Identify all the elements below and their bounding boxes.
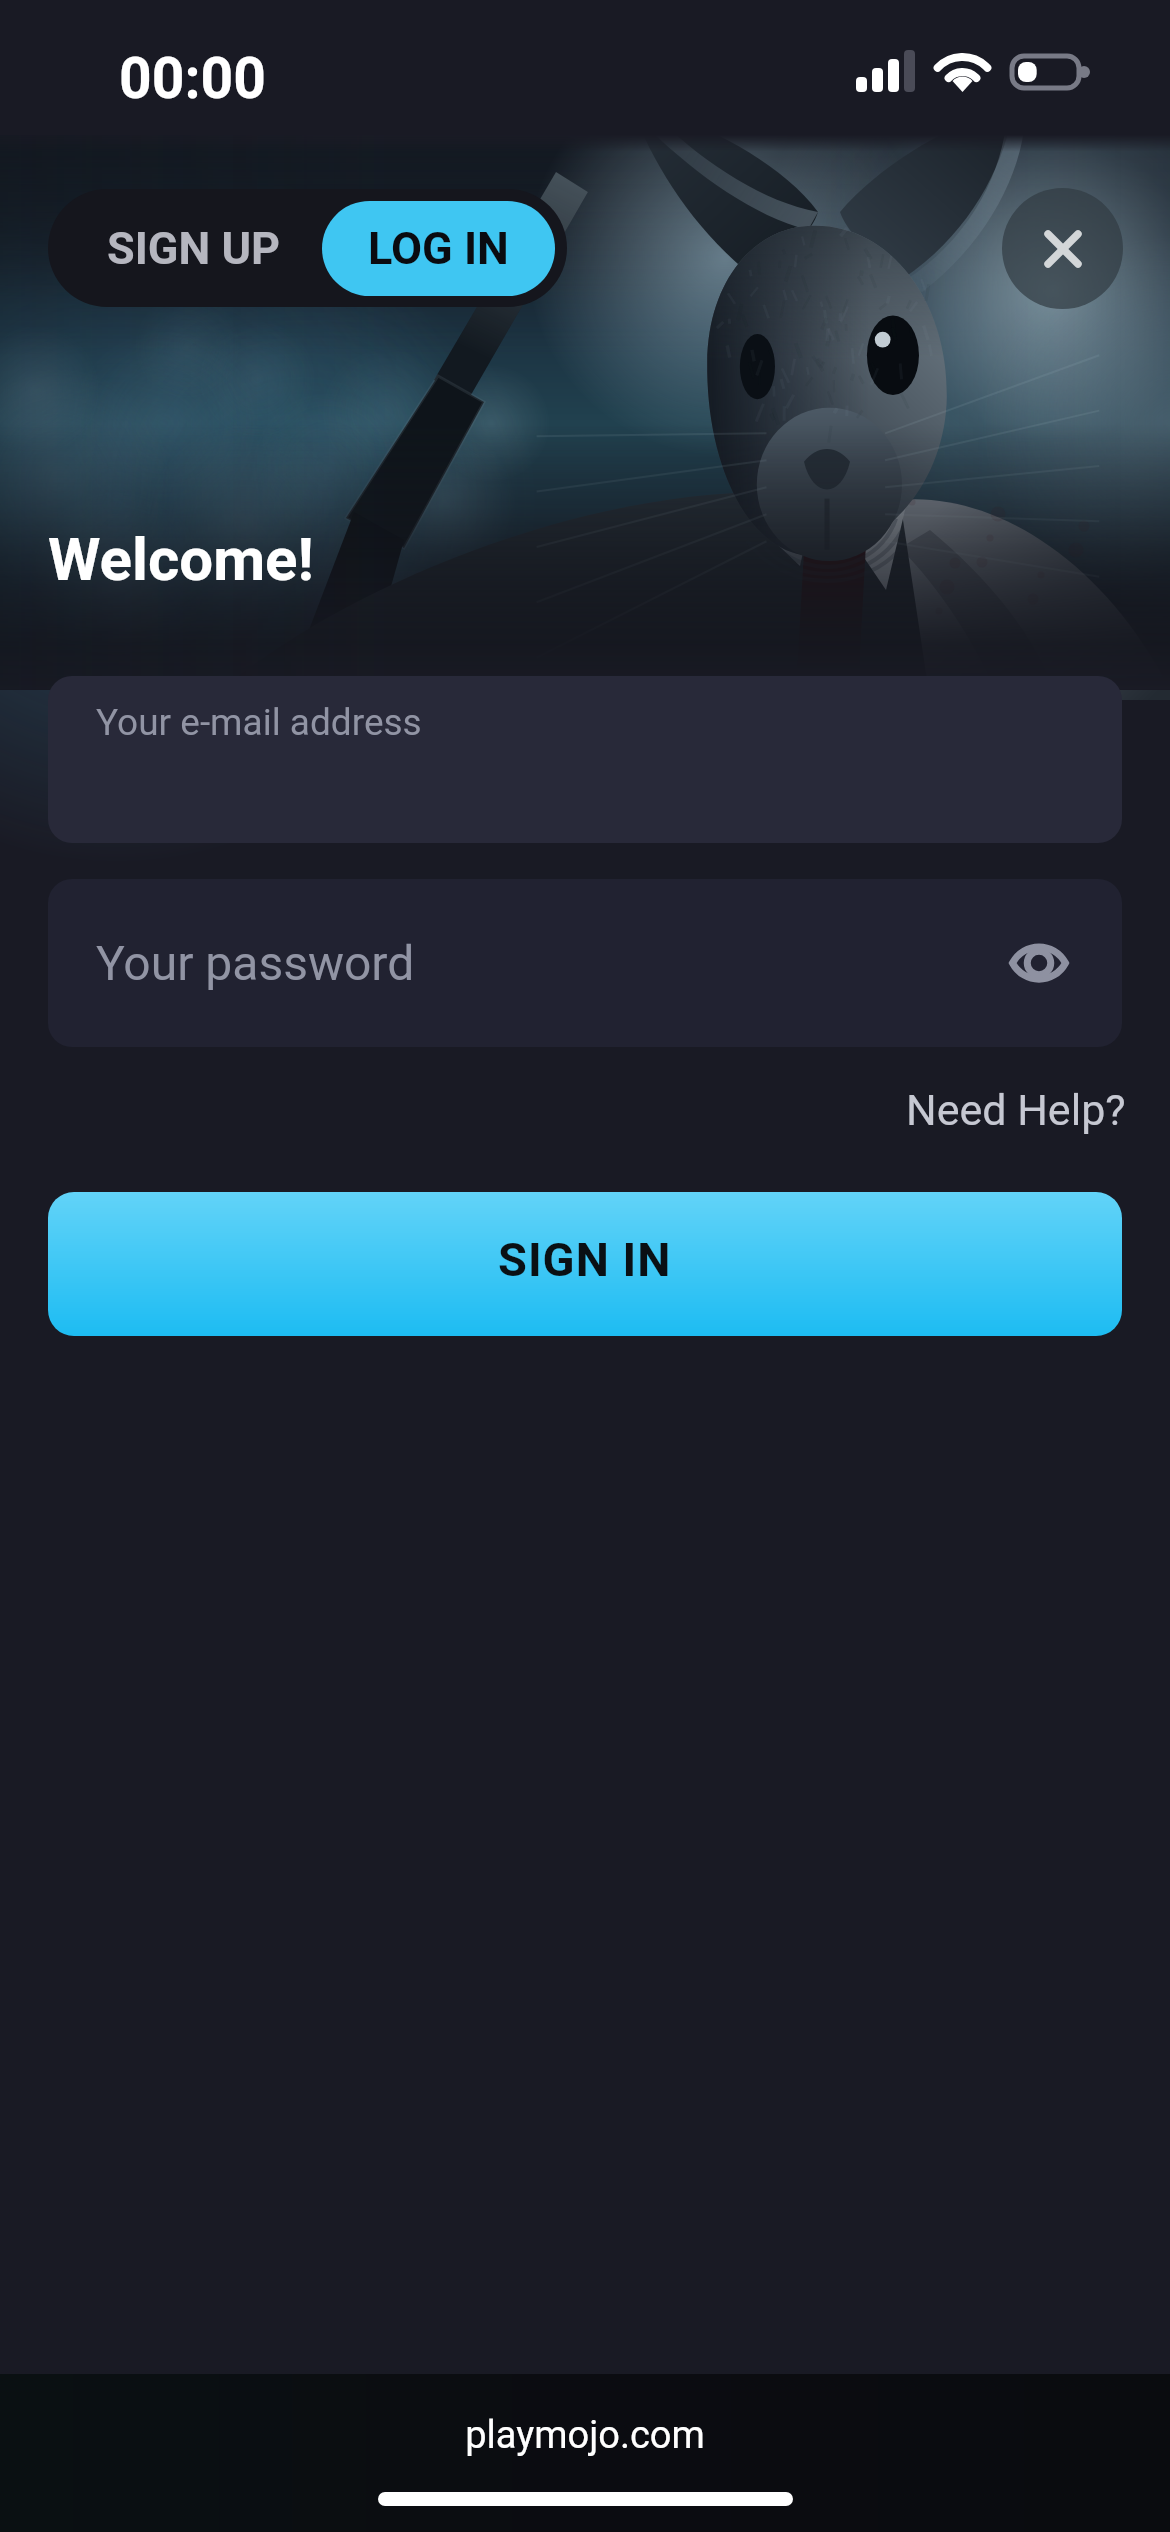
staticText: SIGN UP xyxy=(107,222,281,275)
button[interactable]: Show password xyxy=(996,920,1082,1006)
button[interactable]: SIGN IN xyxy=(48,1192,1122,1336)
button[interactable]: Close xyxy=(1002,188,1123,309)
staticText: Your e-mail address xyxy=(96,701,422,744)
button[interactable]: Need Help? xyxy=(896,1077,1136,1143)
button[interactable]: Your password xyxy=(48,879,1122,1047)
staticText: playmojo.com xyxy=(465,2413,705,2458)
staticText: Need Help? xyxy=(906,1085,1126,1135)
staticText: LOG IN xyxy=(368,222,509,275)
button[interactable]: LOG IN xyxy=(322,201,555,296)
staticText: SIGN IN xyxy=(498,1232,672,1287)
staticText: Welcome! xyxy=(48,524,314,594)
button[interactable]: Your e-mail address xyxy=(48,676,1122,843)
button[interactable]: SIGN UP xyxy=(48,189,322,307)
staticText: Your password xyxy=(96,935,415,991)
staticText: 00:00 xyxy=(119,45,266,112)
